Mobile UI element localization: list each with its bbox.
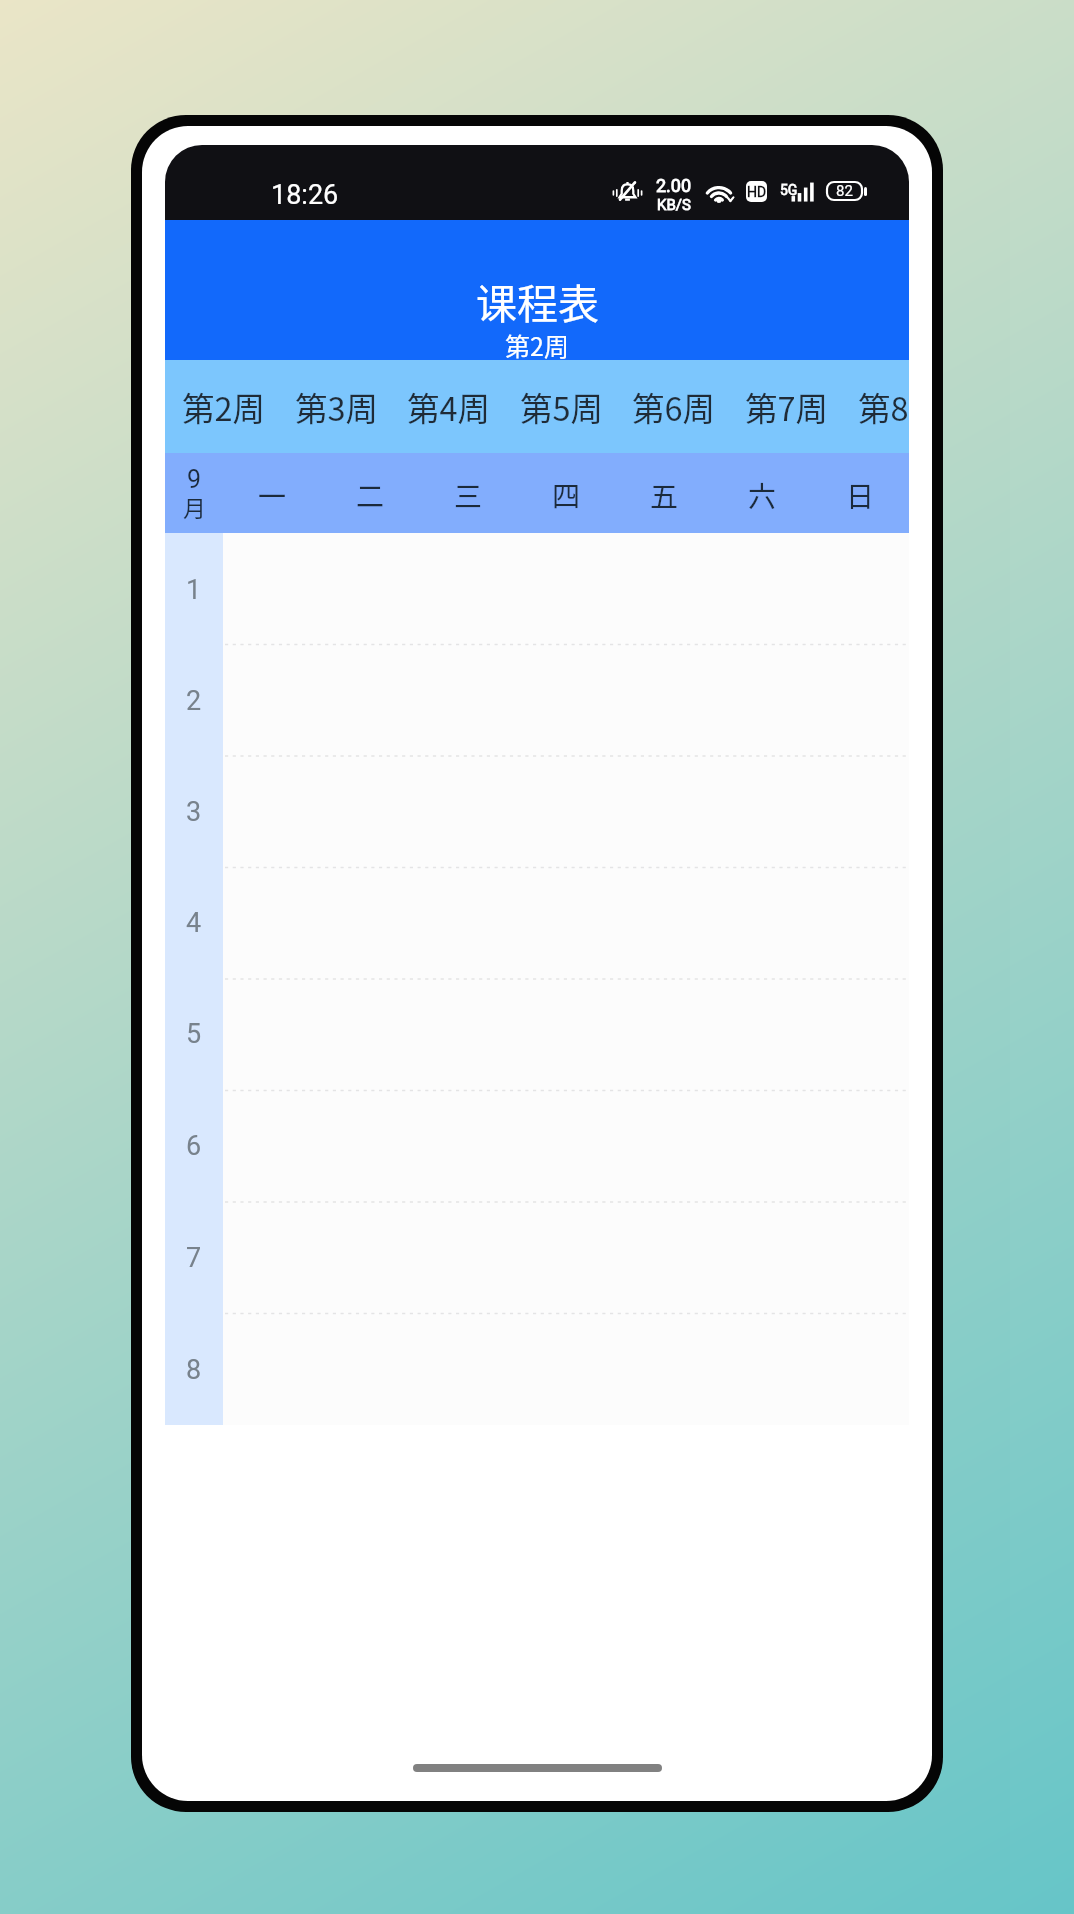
staticText: 5 bbox=[186, 1018, 202, 1050]
other: Battery 82 percent bbox=[826, 181, 867, 201]
button[interactable]: 第6周 bbox=[618, 360, 730, 453]
staticText: 第6周 bbox=[632, 383, 716, 430]
other: Wi-Fi bbox=[707, 181, 733, 203]
staticText: 5G bbox=[780, 182, 798, 198]
staticText: 6 bbox=[186, 1130, 202, 1162]
button[interactable]: 六 bbox=[713, 453, 811, 533]
other: Silent mode bbox=[612, 179, 643, 203]
staticText: KB/S bbox=[657, 196, 691, 214]
button[interactable]: 第5周 bbox=[506, 360, 618, 453]
button[interactable]: 7 bbox=[165, 1201, 223, 1313]
button[interactable]: 5 bbox=[165, 977, 223, 1089]
button[interactable]: 第8周 bbox=[844, 360, 909, 453]
staticText: 第5周 bbox=[520, 383, 604, 430]
button[interactable]: 4 bbox=[165, 866, 223, 977]
staticText: 三 bbox=[454, 475, 483, 516]
staticText: 9 bbox=[187, 465, 202, 494]
staticText: 五 bbox=[650, 475, 679, 516]
staticText: 第8周 bbox=[858, 383, 909, 430]
button[interactable]: 第2周 bbox=[168, 360, 280, 453]
button[interactable]: 一 bbox=[223, 453, 321, 533]
staticText: 课程表 bbox=[476, 271, 599, 330]
button[interactable]: 四 bbox=[517, 453, 615, 533]
button[interactable]: 第4周 bbox=[393, 360, 505, 453]
button[interactable]: 1 bbox=[165, 533, 223, 644]
button[interactable]: 3 bbox=[165, 755, 223, 866]
staticText: 第7周 bbox=[745, 383, 829, 430]
button[interactable]: 二 bbox=[321, 453, 419, 533]
staticText: 一 bbox=[258, 475, 287, 516]
button[interactable]: 6 bbox=[165, 1089, 223, 1201]
button[interactable]: 日 bbox=[811, 453, 909, 533]
button[interactable]: 8 bbox=[165, 1313, 223, 1425]
staticText: HD bbox=[747, 184, 767, 200]
staticText: 四 bbox=[552, 475, 581, 516]
staticText: 18:26 bbox=[271, 179, 339, 211]
staticText: 日 bbox=[846, 475, 875, 516]
button[interactable]: 2 bbox=[165, 644, 223, 755]
button[interactable]: 课程表 bbox=[165, 220, 909, 360]
button[interactable]: 三 bbox=[419, 453, 517, 533]
button[interactable]: 第7周 bbox=[731, 360, 843, 453]
button[interactable]: 五 bbox=[615, 453, 713, 533]
staticText: 第4周 bbox=[407, 383, 491, 430]
button[interactable]: 第3周 bbox=[281, 360, 393, 453]
